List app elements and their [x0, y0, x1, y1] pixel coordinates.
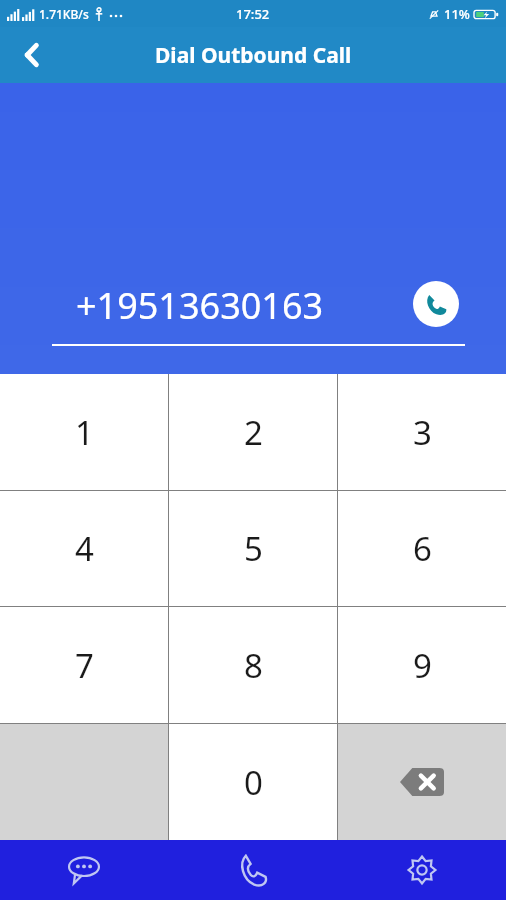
staticText: 3: [413, 410, 432, 455]
staticText: 6: [413, 526, 432, 571]
button[interactable]: 8: [169, 607, 337, 723]
button[interactable]: Call: [413, 281, 459, 327]
button[interactable]: 4: [0, 491, 168, 606]
button[interactable]: Back: [0, 27, 64, 83]
button[interactable]: 7: [0, 607, 168, 723]
button[interactable]: 0: [169, 724, 337, 840]
staticText: Dial Outbound Call: [155, 41, 352, 70]
staticText: 4: [75, 526, 94, 571]
staticText: +19513630163: [76, 281, 324, 330]
staticText: 2: [244, 410, 263, 455]
staticText: 17:52: [236, 5, 270, 23]
button[interactable]: 2: [169, 374, 337, 490]
staticText: 1: [75, 410, 94, 455]
button[interactable]: 6: [338, 491, 506, 606]
staticText: 7: [75, 643, 94, 688]
button[interactable]: 5: [169, 491, 337, 606]
staticText: 8: [244, 643, 263, 688]
button[interactable]: 1: [0, 374, 168, 490]
staticText: 5: [244, 526, 263, 571]
button[interactable]: Backspace: [338, 724, 506, 840]
button[interactable]: 9: [338, 607, 506, 723]
staticText: 9: [413, 643, 432, 688]
staticText: 0: [244, 760, 263, 805]
button[interactable]: Messages: [0, 840, 168, 900]
button[interactable]: Dialer: [168, 840, 337, 900]
button[interactable]: 3: [338, 374, 506, 490]
staticText: 11%: [444, 5, 470, 23]
staticText: 1.71KB/s: [39, 6, 89, 22]
button[interactable]: Settings: [337, 840, 506, 900]
